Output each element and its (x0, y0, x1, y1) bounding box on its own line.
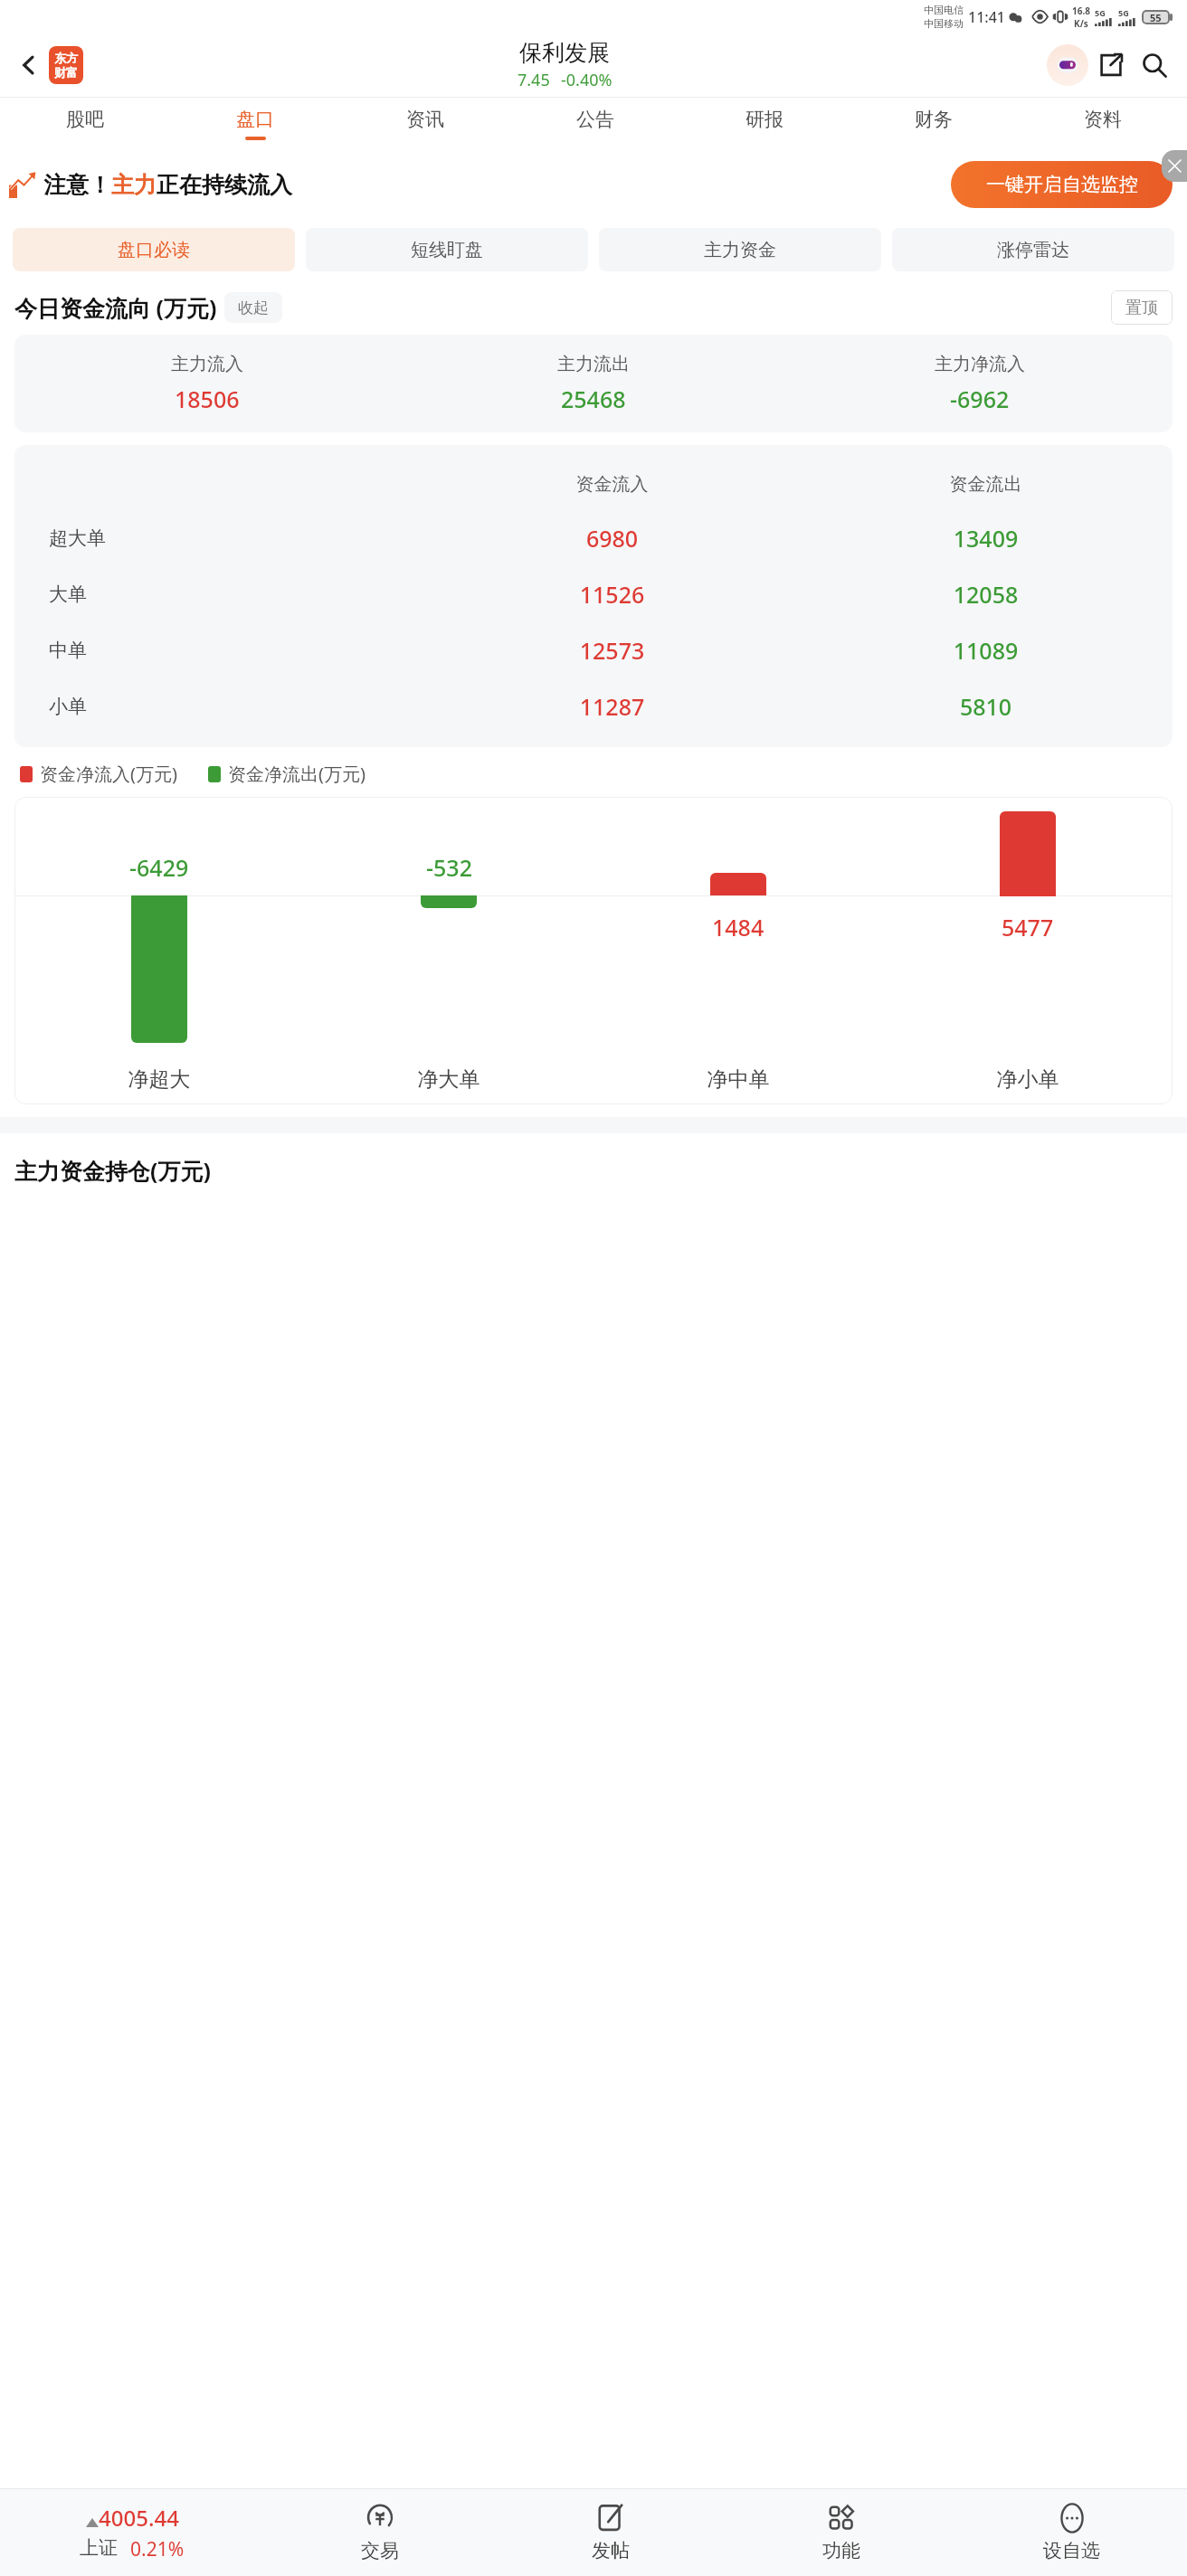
staticText: 5810 (799, 691, 1173, 722)
staticText: 11:41 (968, 7, 1005, 27)
button[interactable]: 交易 (264, 2489, 495, 2576)
staticText: 交易 (361, 2539, 399, 2562)
button[interactable]: 主力流入 (14, 335, 1173, 432)
staticText: 发帖 (592, 2539, 630, 2562)
staticText: 主力流入 (171, 353, 243, 375)
staticText: 主力流出 (557, 353, 630, 375)
staticText: 7.45 (518, 69, 550, 91)
staticText: 55 (1150, 11, 1162, 24)
staticText: 中单 (49, 639, 87, 662)
staticText: 资金净流出(万元) (228, 762, 366, 786)
staticText: -6429 (129, 852, 189, 883)
staticText: 短线盯盘 (411, 239, 483, 261)
button[interactable]: 主力资金 (599, 228, 881, 271)
staticText: 4005.44 (99, 2503, 179, 2533)
staticText: 置顶 (1125, 298, 1158, 318)
staticText: 中国电信 (924, 4, 964, 16)
staticText: 0.21% (130, 2536, 185, 2562)
staticText: 16.8 (1072, 5, 1090, 17)
staticText: -6962 (950, 384, 1010, 414)
staticText: 中国移动 (924, 17, 964, 30)
staticText: 大单 (49, 582, 87, 606)
staticText: 5477 (1002, 912, 1054, 942)
staticText: 小单 (49, 695, 87, 718)
staticText: 资金流入 (425, 473, 799, 496)
staticText: 5G (1118, 7, 1129, 18)
staticText: 财富 (54, 65, 78, 80)
staticText: 主力 (111, 171, 157, 199)
button[interactable]: 资料 (1018, 98, 1187, 150)
button[interactable]: Share (1089, 43, 1133, 87)
staticText: 涨停雷达 (997, 239, 1069, 261)
staticText: -0.40% (561, 69, 612, 91)
staticText: 保利发展 (519, 39, 610, 67)
staticText: 18506 (175, 384, 240, 414)
button[interactable]: 一键开启自选监控 (951, 161, 1173, 208)
staticText: 东方 (54, 51, 78, 65)
staticText: 盘口必读 (118, 239, 190, 261)
button[interactable]: 涨停雷达 (892, 228, 1174, 271)
staticText: 一键开启自选监控 (986, 173, 1138, 196)
staticText: 盘口 (236, 108, 274, 131)
staticText: 净超大 (14, 1066, 304, 1093)
button[interactable]: 小单 (14, 678, 1173, 734)
button[interactable]: 公告 (510, 98, 679, 150)
staticText: 资料 (1084, 108, 1122, 131)
button[interactable]: 置顶 (1111, 290, 1173, 325)
staticText: 公告 (576, 108, 614, 131)
staticText: 6980 (425, 523, 799, 554)
button[interactable]: 盘口 (170, 98, 340, 150)
staticText: 资金净流入(万元) (40, 762, 177, 786)
button[interactable]: 超大单 (14, 510, 1173, 566)
staticText: 11089 (799, 635, 1173, 666)
staticText: 上证 (80, 2536, 118, 2560)
staticText: 股吧 (66, 108, 104, 131)
staticText: 研报 (745, 108, 783, 131)
staticText: 净小单 (883, 1066, 1173, 1093)
button[interactable]: 盘口必读 (13, 228, 295, 271)
button[interactable]: Search (1133, 43, 1176, 87)
button[interactable]: 设自选 (956, 2489, 1187, 2576)
button[interactable]: 大单 (14, 566, 1173, 622)
button[interactable]: 4005.44 (0, 2489, 264, 2576)
button[interactable]: 股吧 (0, 98, 170, 150)
staticText: 5G (1095, 7, 1106, 18)
staticText: 超大单 (49, 526, 106, 550)
button[interactable]: 短线盯盘 (306, 228, 588, 271)
staticText: 注意！ (43, 171, 111, 199)
button[interactable]: 资讯 (340, 98, 510, 150)
staticText: 25468 (561, 384, 626, 414)
staticText: 13409 (799, 523, 1173, 554)
staticText: 11526 (425, 579, 799, 610)
staticText: 12573 (425, 635, 799, 666)
button[interactable]: 收起 (224, 292, 282, 323)
staticText: 12058 (799, 579, 1173, 610)
staticText: 主力资金 (704, 239, 776, 261)
button[interactable]: Close (1162, 150, 1187, 182)
staticText: 资讯 (406, 108, 444, 131)
button[interactable]: Back (11, 47, 47, 83)
staticText: 今日资金流向 (万元) (14, 292, 217, 323)
button[interactable]: 研报 (679, 98, 849, 150)
staticText: 资金流出 (799, 473, 1173, 496)
staticText: 财务 (915, 108, 953, 131)
staticText: 1484 (712, 912, 764, 942)
staticText: 11287 (425, 691, 799, 722)
staticText: K/s (1074, 17, 1088, 30)
staticText: 功能 (822, 2539, 860, 2562)
staticText: 主力净流入 (935, 353, 1025, 375)
staticText: 主力资金持仓(万元) (14, 1155, 211, 1186)
staticText: 正在持续流入 (157, 171, 292, 199)
button[interactable]: 功能 (726, 2489, 956, 2576)
staticText: 净中单 (593, 1066, 883, 1093)
staticText: 净大单 (304, 1066, 593, 1093)
button[interactable]: 东方财富 (49, 46, 83, 84)
staticText: 收起 (238, 298, 269, 317)
staticText: -532 (426, 852, 472, 883)
button[interactable]: 财务 (849, 98, 1018, 150)
button[interactable]: 中单 (14, 622, 1173, 678)
staticText: 设自选 (1043, 2539, 1100, 2562)
button[interactable]: 发帖 (495, 2489, 726, 2576)
button[interactable]: AI助手 (1046, 43, 1089, 87)
